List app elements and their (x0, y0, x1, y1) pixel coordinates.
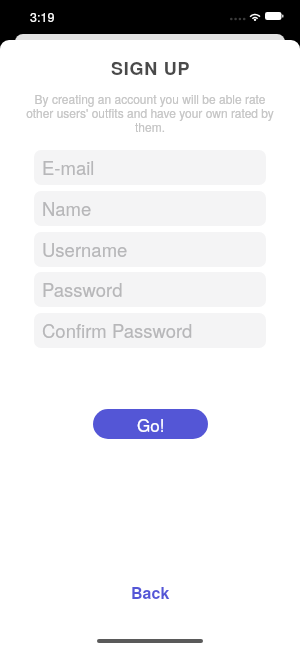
staticText: E-mail (42, 154, 95, 180)
button[interactable]: Go! (93, 409, 208, 439)
staticText: Name (42, 195, 92, 221)
staticText: Go! (137, 412, 165, 436)
button[interactable]: E-mail (34, 150, 266, 185)
staticText: SIGN UP (111, 55, 191, 81)
other: Battery (265, 12, 284, 20)
button[interactable]: Username (34, 232, 266, 267)
staticText: Password (42, 276, 123, 302)
button[interactable]: Back (109, 572, 192, 613)
staticText: Confirm Password (42, 317, 193, 343)
staticText: By creating an account you will be able … (23, 90, 277, 135)
staticText: 3:19 (30, 8, 55, 26)
button[interactable]: Confirm Password (34, 313, 266, 348)
button[interactable]: Name (34, 191, 266, 226)
staticText: Username (42, 236, 128, 262)
button[interactable]: Password (34, 272, 266, 307)
other: Wi-Fi (249, 12, 261, 21)
other: Cellular signal (230, 16, 245, 22)
staticText: Back (131, 581, 170, 604)
